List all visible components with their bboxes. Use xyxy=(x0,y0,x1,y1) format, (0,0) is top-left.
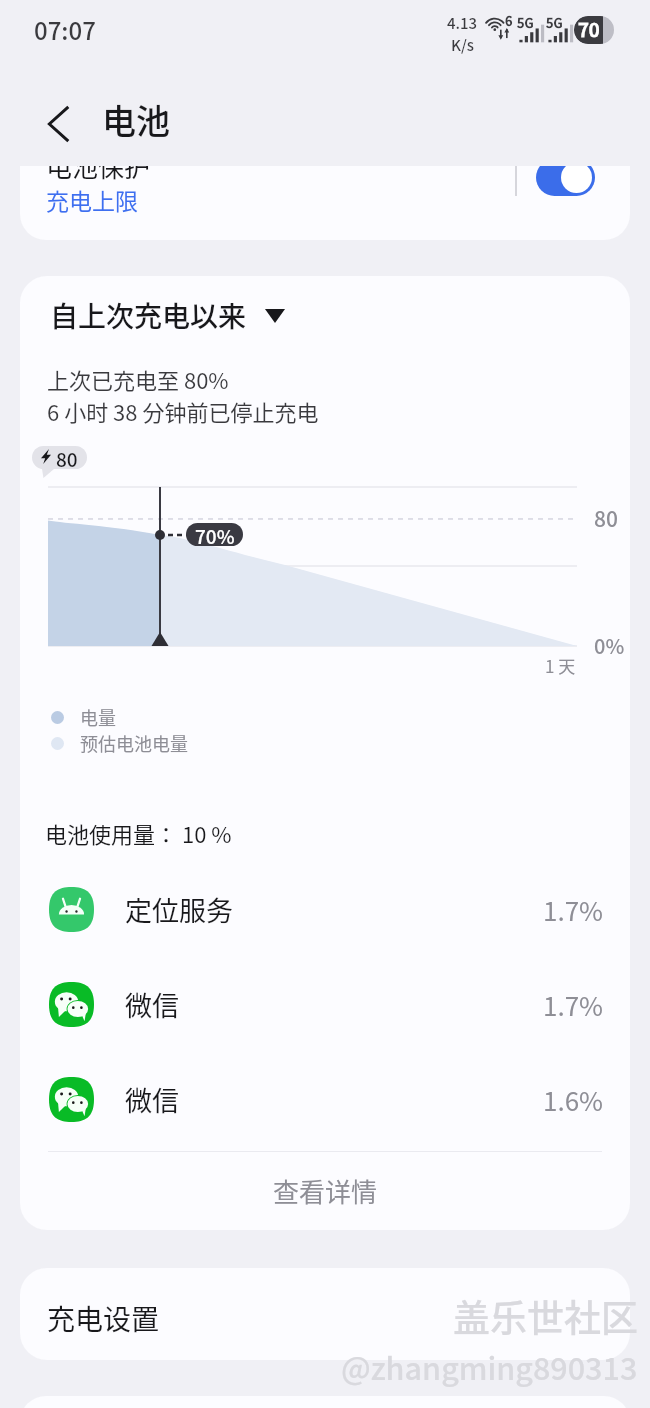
staticText: 上次已充电至 80% xyxy=(47,363,229,395)
staticText: 80 xyxy=(594,503,618,533)
staticText: 定位服务 xyxy=(125,890,543,929)
staticText: 70 xyxy=(578,16,600,43)
button[interactable]: 微信 xyxy=(20,1052,630,1147)
staticText: 微信 xyxy=(125,985,543,1024)
staticText: 80 xyxy=(56,446,78,468)
staticText: 1.7% xyxy=(543,891,604,929)
staticText: 微信 xyxy=(125,1080,543,1119)
button[interactable]: 自上次充电以来 xyxy=(50,295,285,336)
button[interactable]: 定位服务 xyxy=(20,862,630,957)
staticText: 预估电池电量 xyxy=(80,730,188,756)
button[interactable]: 电池保护 xyxy=(20,166,630,240)
button[interactable]: 查看详情 xyxy=(20,1152,630,1230)
staticText: 电池使用量： 10 % xyxy=(45,817,232,849)
staticText: 07:07 xyxy=(34,12,96,47)
staticText: 电池保护 xyxy=(46,166,151,185)
staticText: 充电上限 xyxy=(46,183,138,216)
staticText: 0% xyxy=(594,631,625,660)
staticText: 4.13 xyxy=(447,12,478,34)
button[interactable]: Charge limit toggle xyxy=(536,166,595,196)
staticText: 5G xyxy=(517,13,534,32)
staticText: K/s xyxy=(451,34,475,56)
button[interactable]: 微信 xyxy=(20,957,630,1052)
staticText: 6 小时 38 分钟前已停止充电 xyxy=(47,395,319,427)
staticText: 1 天 xyxy=(545,653,576,678)
staticText: 查看详情 xyxy=(273,1172,378,1210)
staticText: 70% xyxy=(195,523,235,545)
staticText: 充电设置 xyxy=(47,1298,160,1339)
staticText: 电池 xyxy=(102,95,170,144)
staticText: 盖乐世社区 xyxy=(453,1289,638,1343)
staticText: 1.7% xyxy=(543,986,604,1024)
staticText: @zhangming890313 xyxy=(341,1345,638,1389)
staticText: 1.6% xyxy=(543,1081,604,1119)
button[interactable]: 充电设置 xyxy=(20,1268,630,1360)
staticText: 5G xyxy=(546,13,563,32)
staticText: 自上次充电以来 xyxy=(50,295,247,336)
staticText: 电量 xyxy=(80,704,116,730)
button[interactable]: Back xyxy=(35,99,85,149)
staticText: 6 xyxy=(505,11,513,30)
